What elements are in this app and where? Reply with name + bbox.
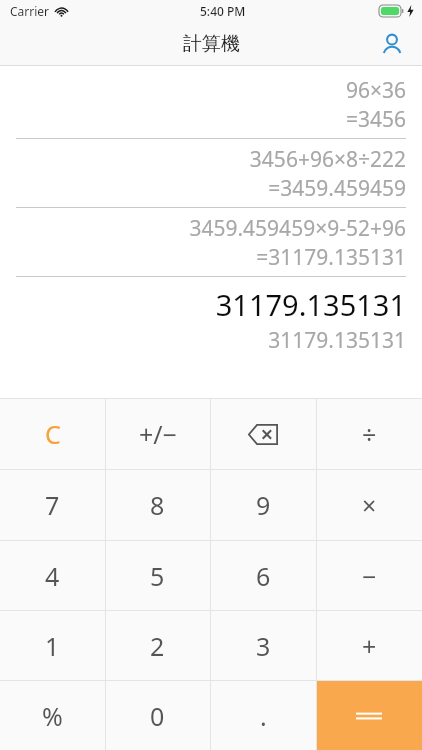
staticText: Carrier [10,3,50,19]
button[interactable]: 4 [0,541,105,610]
staticText: 1 [45,629,60,663]
staticText: 3 [256,629,271,663]
button[interactable]: +/− [105,399,210,469]
staticText: 96×36 [0,76,406,105]
staticText: + [362,629,377,663]
button[interactable]: 3 [210,611,316,680]
button[interactable]: . [210,681,316,750]
staticText: 7 [45,488,60,522]
staticText: . [260,699,267,733]
staticText: 31179.135131 [0,285,406,324]
staticText: − [362,559,377,593]
staticText: 5 [150,559,165,593]
button[interactable]: ÷ [316,399,422,469]
staticText: 9 [256,488,271,522]
button[interactable]: C [0,399,105,469]
staticText: 0 [150,699,165,733]
button[interactable] [316,681,422,750]
button[interactable]: 1 [0,611,105,680]
staticText: ÷ [362,417,377,451]
button[interactable]: Account [372,24,412,64]
button[interactable]: % [0,681,105,750]
button[interactable]: 9 [210,470,316,540]
button[interactable]: 3459.459459×9-52+96 [0,212,422,276]
staticText: 5:40 PM [200,3,246,19]
button[interactable]: 96×36 [0,74,422,138]
staticText: 計算機 [183,32,240,56]
button[interactable]: 3456+96×8÷222 [0,143,422,207]
staticText: % [42,699,63,733]
staticText: 4 [45,559,60,593]
button[interactable]: Backspace [210,399,316,469]
button[interactable]: 2 [105,611,210,680]
staticText: =3456 [0,105,406,134]
staticText: 8 [150,488,165,522]
button[interactable]: 8 [105,470,210,540]
staticText: 31179.135131 [0,326,406,355]
button[interactable]: 0 [105,681,210,750]
staticText: =3459.459459 [0,174,406,203]
button[interactable]: 6 [210,541,316,610]
staticText: × [362,488,377,522]
staticText: =31179.135131 [0,243,406,272]
staticText: 2 [150,629,165,663]
button[interactable]: 7 [0,470,105,540]
button[interactable]: + [316,611,422,680]
staticText: +/− [139,417,177,451]
staticText: 6 [256,559,271,593]
staticText: 3459.459459×9-52+96 [0,214,406,243]
staticText: 3456+96×8÷222 [0,145,406,174]
button[interactable]: × [316,470,422,540]
button[interactable]: 5 [105,541,210,610]
staticText: C [45,417,61,451]
button[interactable]: − [316,541,422,610]
